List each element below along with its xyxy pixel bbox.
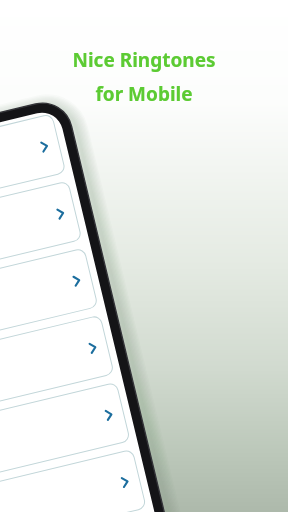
button[interactable]: Phone showing ringtone list preview	[0, 0, 288, 512]
staticText: for Mobile	[95, 81, 193, 107]
staticText: Nice Ringtones	[72, 47, 216, 73]
